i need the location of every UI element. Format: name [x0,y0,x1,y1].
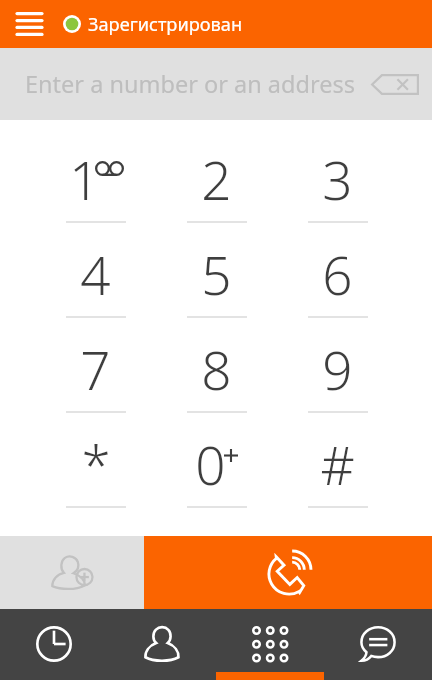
button[interactable]: 3 [277,138,398,233]
button[interactable]: Call [144,536,432,609]
button[interactable]: 8 [156,328,277,423]
button[interactable]: Recents [0,609,108,680]
staticText: 3 [322,143,353,215]
button[interactable]: Keypad [216,609,324,680]
button[interactable]: Menu [0,0,58,48]
button[interactable]: 5 [156,233,277,328]
staticText: Enter a number or an address [25,68,355,100]
button[interactable]: Contacts [108,609,216,680]
button[interactable]: 9 [277,328,398,423]
button[interactable]: Add contact [0,536,144,609]
button[interactable]: Backspace [364,59,426,109]
button[interactable]: # [277,423,398,518]
button[interactable]: * [35,423,156,518]
staticText: 9 [322,333,353,405]
staticText: 5 [201,238,232,310]
button[interactable]: 2 [156,138,277,233]
staticText: * [81,428,111,500]
button[interactable]: Messages [324,609,432,680]
button[interactable]: 4 [35,233,156,328]
staticText: 1 [69,143,100,215]
button[interactable]: 6 [277,233,398,328]
staticText: 8 [201,333,232,405]
button[interactable]: 7 [35,328,156,423]
staticText: 4 [80,238,111,310]
staticText: 6 [322,238,353,310]
staticText: 2 [201,143,232,215]
button[interactable]: 0 [156,423,277,518]
staticText: 7 [80,333,111,405]
button[interactable]: 1 [35,138,156,233]
staticText: # [320,428,355,500]
staticText: 0 [195,428,226,500]
staticText: Зарегистрирован [88,12,243,37]
